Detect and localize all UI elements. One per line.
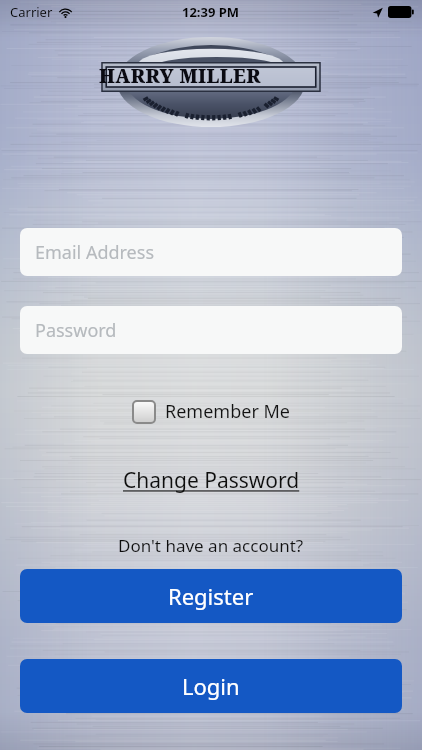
staticText: Don't have an account? [118,534,304,557]
staticText: Remember Me [165,399,290,424]
staticText: Email Address [35,240,155,265]
staticText: 12:39 PM [182,3,240,21]
button[interactable]: Register [20,569,402,623]
button[interactable]: Change Password [115,462,308,499]
button[interactable]: Email Address [20,228,402,276]
staticText: Change Password [123,466,300,495]
button[interactable]: Login [20,659,402,713]
staticText: Login [182,671,240,701]
staticText: Register [168,581,254,611]
staticText: HARRY MILLER CORP [99,63,323,91]
button[interactable]: Remember Me [129,395,294,428]
staticText: Carrier [10,3,53,21]
button[interactable]: Password [20,306,402,354]
staticText: Password [35,318,117,343]
